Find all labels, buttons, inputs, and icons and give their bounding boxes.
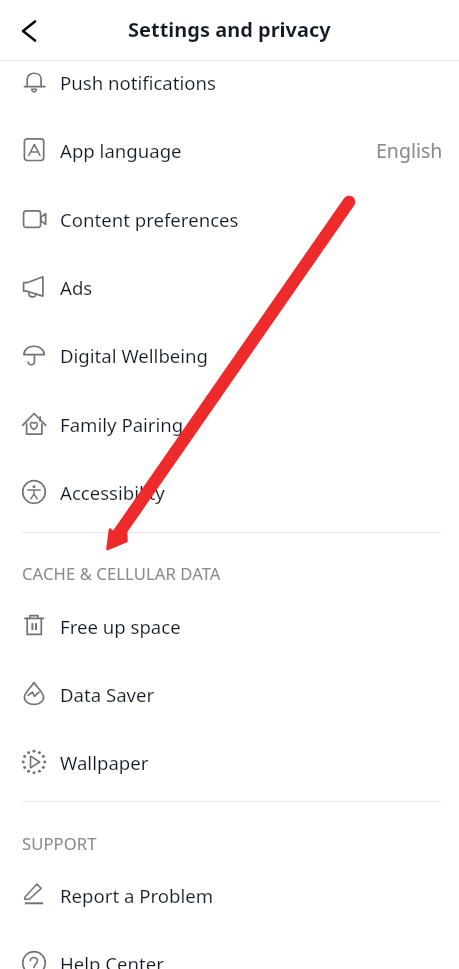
- staticText: Data Saver: [60, 682, 155, 707]
- staticText: Report a Problem: [60, 883, 214, 908]
- button[interactable]: Wallpaper: [0, 728, 459, 796]
- staticText: Content preferences: [60, 207, 239, 232]
- button[interactable]: Digital Wellbeing: [0, 321, 459, 389]
- button[interactable]: Content preferences: [0, 185, 459, 253]
- button[interactable]: Free up space: [0, 592, 459, 660]
- staticText: Family Pairing: [60, 412, 184, 437]
- staticText: Accessibility: [60, 480, 165, 505]
- staticText: App language: [60, 138, 182, 163]
- button[interactable]: Ads: [0, 253, 459, 321]
- staticText: CACHE & CELLULAR DATA: [22, 562, 221, 584]
- button[interactable]: Push notifications: [0, 48, 459, 116]
- button[interactable]: Family Pairing: [0, 390, 459, 458]
- button[interactable]: Help Center: [0, 929, 459, 969]
- button[interactable]: App language: [0, 116, 459, 184]
- button[interactable]: Accessibility: [0, 458, 459, 526]
- staticText: Settings and privacy: [128, 16, 331, 43]
- staticText: Help Center: [60, 951, 164, 969]
- staticText: Push notifications: [60, 70, 216, 95]
- button[interactable]: Data Saver: [0, 660, 459, 728]
- button[interactable]: Report a Problem: [0, 861, 459, 929]
- staticText: SUPPORT: [22, 832, 97, 854]
- staticText: English: [376, 137, 443, 164]
- staticText: Ads: [60, 275, 93, 300]
- staticText: Free up space: [60, 614, 181, 639]
- staticText: Wallpaper: [60, 750, 149, 775]
- staticText: Digital Wellbeing: [60, 343, 209, 368]
- button[interactable]: Back: [6, 8, 52, 54]
